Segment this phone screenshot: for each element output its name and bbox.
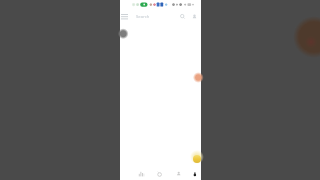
button[interactable]: Account	[189, 11, 199, 21]
button[interactable]: Places	[141, 166, 161, 180]
button[interactable]: More	[181, 166, 201, 180]
button[interactable]: Account	[161, 166, 181, 180]
button[interactable]: Stats	[120, 166, 141, 180]
button[interactable]: Open navigation menu	[118, 11, 130, 22]
staticText: Search	[136, 14, 150, 20]
button[interactable]: Search	[177, 11, 187, 21]
button[interactable]: Search	[136, 12, 166, 21]
button[interactable]: Create	[193, 155, 201, 163]
